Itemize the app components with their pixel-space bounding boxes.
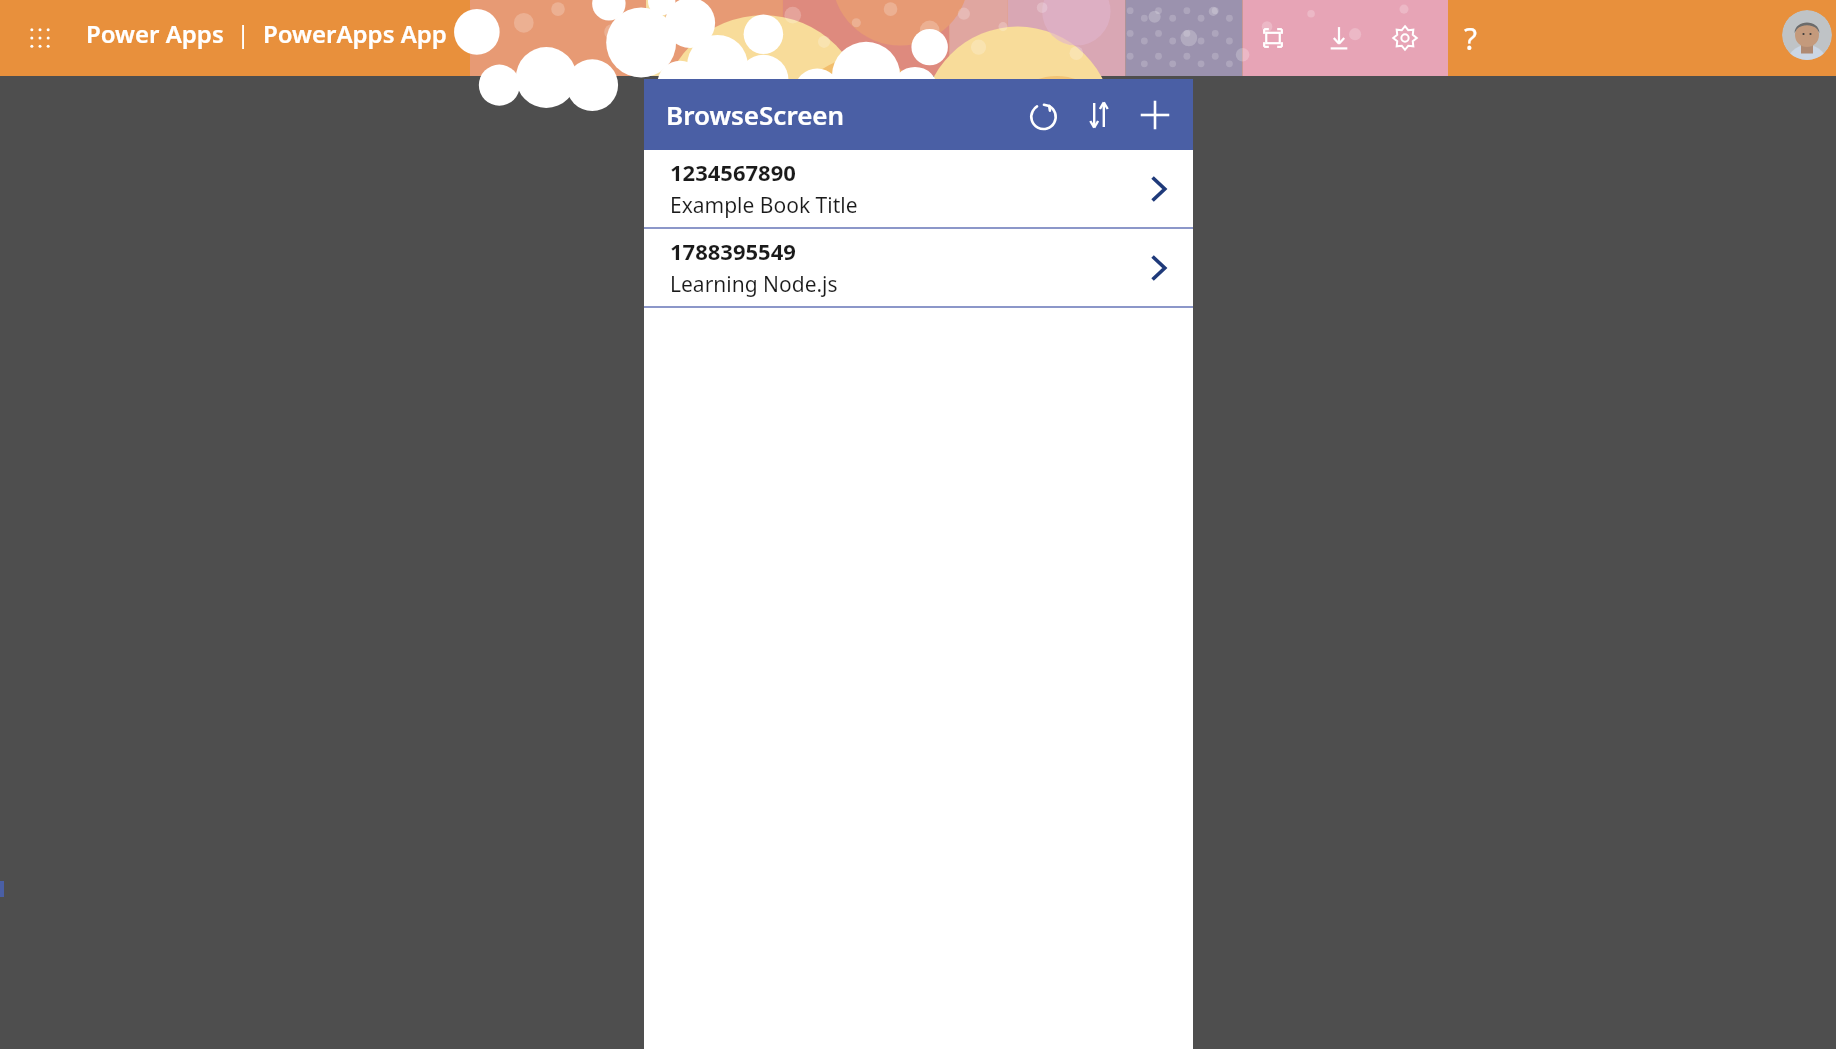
button[interactable]: Download (1311, 10, 1367, 66)
button[interactable]: Full screen (1245, 10, 1301, 66)
button[interactable]: 1788395549 (644, 229, 1193, 306)
staticText: Power Apps (86, 17, 224, 50)
button[interactable]: Account (1782, 10, 1832, 60)
button[interactable]: App launcher (18, 16, 62, 60)
button[interactable]: Settings (1377, 10, 1433, 66)
button[interactable]: Refresh (1015, 87, 1071, 143)
staticText: BrowseScreen (666, 97, 845, 132)
staticText: Example Book Title (670, 191, 858, 220)
button[interactable]: Help (1443, 10, 1499, 66)
staticText: Learning Node.js (670, 270, 838, 299)
button[interactable]: Sort (1071, 87, 1127, 143)
staticText: PowerApps App (263, 17, 447, 50)
staticText: ? (1464, 18, 1478, 59)
staticText: 1788395549 (670, 236, 796, 266)
button[interactable]: 1234567890 (644, 150, 1193, 227)
staticText: | (224, 17, 263, 50)
staticText: 1234567890 (670, 157, 796, 187)
button[interactable]: Add (1127, 87, 1183, 143)
